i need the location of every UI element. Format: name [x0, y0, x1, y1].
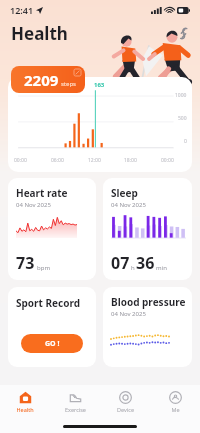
- button[interactable]: Sport Record: [8, 287, 96, 367]
- button[interactable]: Heart rate: [8, 178, 96, 280]
- staticText: 1000: [175, 92, 187, 99]
- staticText: steps: [61, 80, 76, 88]
- staticText: Blood pressure: [111, 295, 186, 309]
- staticText: GO !: [45, 339, 60, 349]
- staticText: 12:41: [10, 4, 34, 16]
- button[interactable]: Link: [174, 24, 192, 42]
- staticText: bpm: [37, 264, 50, 272]
- staticText: Exercise: [65, 406, 86, 413]
- button[interactable]: 2209: [11, 66, 85, 93]
- staticText: 12:00: [88, 157, 101, 164]
- button[interactable]: Blood pressure: [103, 287, 192, 367]
- staticText: 04 Nov 2025: [111, 201, 146, 209]
- staticText: Health: [16, 406, 34, 413]
- button[interactable]: Health: [0, 385, 50, 419]
- staticText: 18:00: [124, 157, 137, 164]
- staticText: Me: [171, 406, 180, 413]
- staticText: Sleep: [111, 186, 138, 200]
- staticText: 06:00: [51, 157, 64, 164]
- staticText: 2209: [24, 70, 59, 90]
- staticText: 04 Nov 2025: [111, 310, 146, 318]
- staticText: min: [156, 264, 167, 272]
- staticText: 00:00: [161, 157, 174, 164]
- staticText: 500: [178, 115, 187, 122]
- staticText: 36: [136, 252, 155, 274]
- button[interactable]: 163: [8, 77, 192, 172]
- staticText: 04 Nov 2025: [16, 201, 51, 209]
- staticText: 00:00: [14, 157, 27, 164]
- staticText: h: [131, 264, 135, 272]
- staticText: Device: [117, 406, 134, 413]
- button[interactable]: Exercise: [50, 385, 100, 419]
- staticText: 07: [111, 252, 130, 274]
- staticText: 0: [184, 138, 187, 145]
- staticText: Sport Record: [16, 296, 81, 310]
- staticText: 73: [16, 252, 35, 274]
- button[interactable]: Device: [100, 385, 150, 419]
- button[interactable]: Me: [150, 385, 200, 419]
- staticText: Heart rate: [16, 186, 68, 200]
- staticText: Health: [11, 22, 68, 45]
- button[interactable]: GO !: [21, 334, 83, 353]
- button[interactable]: Sleep: [103, 178, 192, 280]
- staticText: 163: [94, 81, 105, 89]
